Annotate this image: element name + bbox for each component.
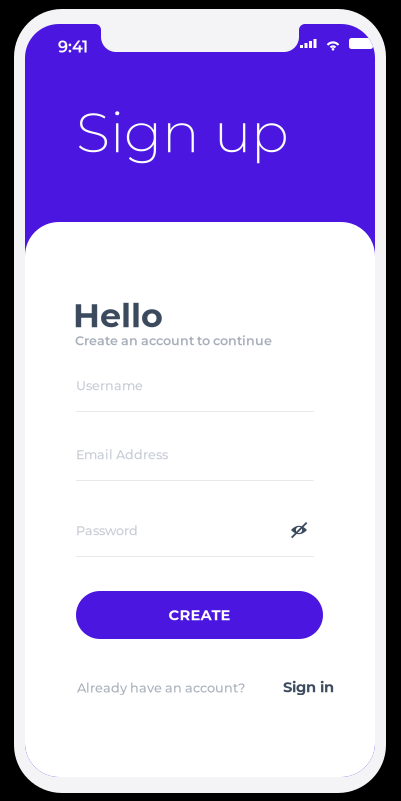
button[interactable]: Sign in <box>283 678 334 696</box>
staticText: Hello <box>73 295 163 336</box>
button[interactable]: CREATE <box>76 591 323 639</box>
staticText: Password <box>76 523 138 538</box>
staticText: Sign in <box>283 678 334 696</box>
button[interactable]: Show password <box>289 521 309 539</box>
staticText: Username <box>76 378 143 393</box>
staticText: 9:41 <box>58 37 88 56</box>
staticText: Create an account to continue <box>75 333 272 348</box>
staticText: Email Address <box>76 447 168 462</box>
staticText: CREATE <box>168 606 230 624</box>
staticText: Already have an account? <box>77 680 245 696</box>
staticText: Sign up <box>76 98 289 166</box>
